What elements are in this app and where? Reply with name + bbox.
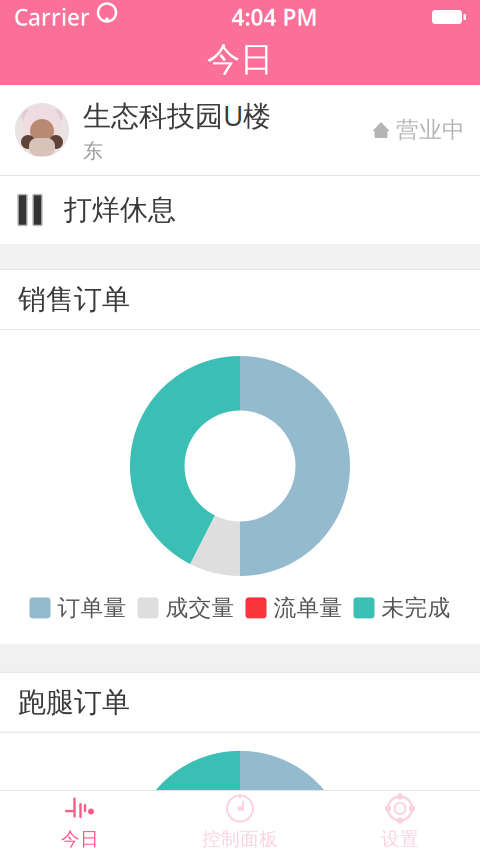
staticText: 订单量 xyxy=(57,594,126,622)
staticText: 未完成 xyxy=(381,594,450,622)
staticText: 营业中 xyxy=(396,116,465,144)
staticText: 生态科技园U楼 xyxy=(83,97,271,134)
staticText: 东 xyxy=(83,139,103,163)
button[interactable]: 设置 xyxy=(320,791,480,853)
button[interactable]: 打烊休息 xyxy=(0,176,480,244)
button[interactable]: 生态科技园U楼 xyxy=(0,85,480,175)
staticText: 流单量 xyxy=(273,594,342,622)
staticText: 今日 xyxy=(207,39,273,80)
staticText: 销售订单 xyxy=(18,282,130,317)
staticText: 设置 xyxy=(381,827,419,850)
staticText: 今日 xyxy=(61,827,99,850)
staticText: 成交量 xyxy=(165,594,234,622)
staticText: 打烊休息 xyxy=(64,193,176,227)
staticText: Carrier xyxy=(14,2,90,32)
button[interactable]: 控制面板 xyxy=(160,791,320,853)
staticText: 控制面板 xyxy=(202,827,278,850)
staticText: 跑腿订单 xyxy=(18,685,130,719)
staticText: 4:04 PM xyxy=(231,2,317,32)
button[interactable]: 今日 xyxy=(0,791,160,853)
